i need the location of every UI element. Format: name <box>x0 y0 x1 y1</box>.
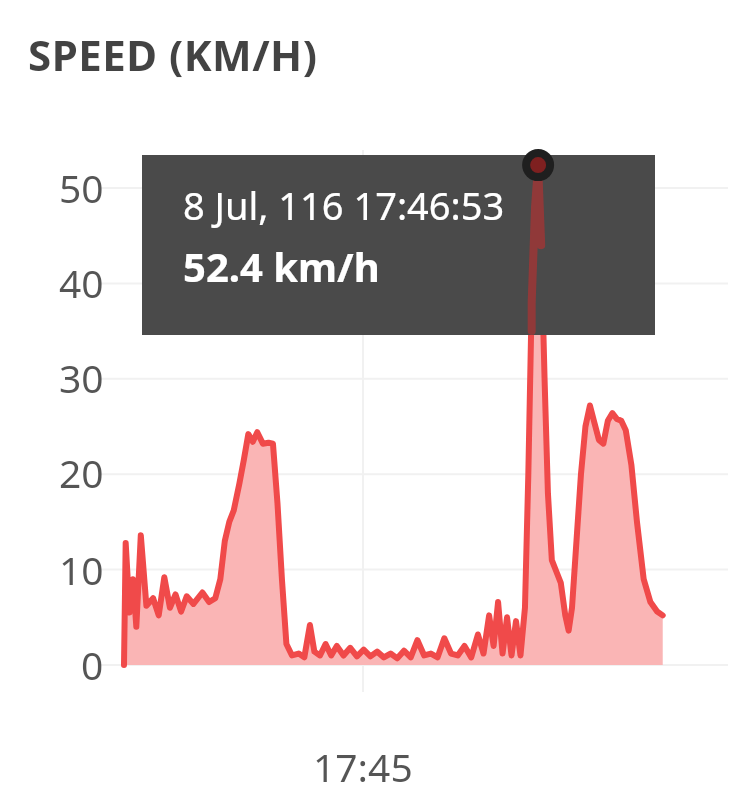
button[interactable]: Selected data point <box>142 155 655 335</box>
staticText: SPEED (KM/H) <box>28 26 318 83</box>
staticText: 40 <box>59 256 104 309</box>
staticText: 0 <box>81 638 104 691</box>
button[interactable]: SPEED (KM/H) <box>28 26 318 83</box>
staticText: 50 <box>59 161 104 214</box>
staticText: 17:45 <box>313 740 413 793</box>
staticText: 8 Jul, 116 17:46:53 <box>183 179 505 231</box>
staticText: 52.4 km/h <box>183 239 380 293</box>
staticText: 30 <box>59 351 104 404</box>
staticText: 20 <box>59 446 104 499</box>
staticText: 10 <box>59 543 104 596</box>
